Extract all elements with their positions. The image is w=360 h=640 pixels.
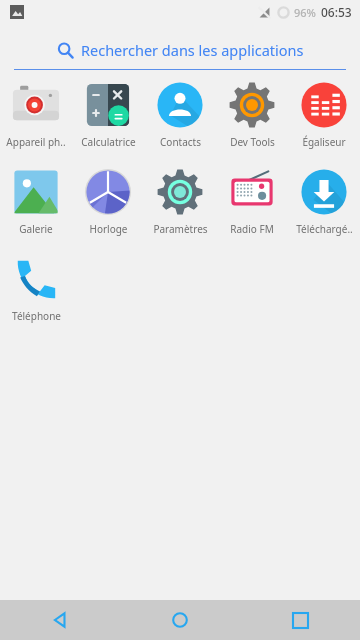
button[interactable]: Égaliseur xyxy=(288,76,360,154)
staticText: Radio FM xyxy=(230,222,274,236)
button[interactable]: Galerie xyxy=(0,163,72,241)
button[interactable]: Calculatrice xyxy=(72,76,144,154)
button[interactable]: Paramètres xyxy=(144,163,216,241)
staticText: 06:53 xyxy=(321,4,352,20)
button[interactable]: Contacts xyxy=(144,76,216,154)
staticText: Dev Tools xyxy=(230,135,275,149)
button[interactable]: Home xyxy=(120,600,240,640)
staticText: Calculatrice xyxy=(81,135,136,149)
staticText: Paramètres xyxy=(153,222,208,236)
button[interactable]: Dev Tools xyxy=(216,76,288,154)
staticText: 96% xyxy=(294,5,316,20)
button[interactable]: Back xyxy=(0,600,120,640)
button[interactable]: Appareil ph.. xyxy=(0,76,72,154)
button[interactable]: Rechercher dans les applications xyxy=(14,24,346,70)
button[interactable]: Horloge xyxy=(72,163,144,241)
staticText: Galerie xyxy=(19,222,53,236)
staticText: Rechercher dans les applications xyxy=(81,40,304,60)
staticText: Appareil ph.. xyxy=(6,135,66,149)
staticText: Téléphone xyxy=(12,309,61,323)
button[interactable]: Radio FM xyxy=(216,163,288,241)
staticText: Téléchargé.. xyxy=(296,222,353,236)
staticText: Horloge xyxy=(89,222,128,236)
button[interactable]: Téléchargé.. xyxy=(288,163,360,241)
button[interactable]: Recent apps xyxy=(240,600,360,640)
staticText: Égaliseur xyxy=(302,135,346,149)
button[interactable]: Téléphone xyxy=(0,250,72,328)
staticText: Contacts xyxy=(160,135,201,149)
